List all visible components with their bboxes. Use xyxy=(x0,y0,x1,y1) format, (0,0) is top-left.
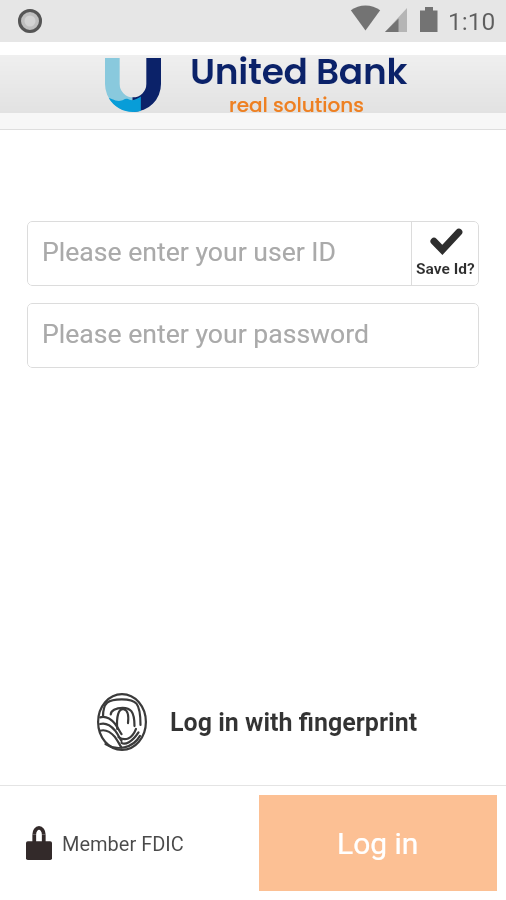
button[interactable]: Log in with fingerprint xyxy=(97,693,418,751)
staticText: Log in with fingerprint xyxy=(170,708,418,737)
staticText: Member FDIC xyxy=(62,832,184,855)
button[interactable]: Log in xyxy=(259,795,497,891)
staticText: 1:10 xyxy=(448,7,496,36)
staticText: Please enter your password xyxy=(42,318,370,349)
staticText: United Bank xyxy=(190,46,408,96)
staticText: real solutions xyxy=(229,91,364,119)
button[interactable]: Please enter your password xyxy=(27,303,479,368)
button[interactable]: Member FDIC xyxy=(26,826,184,860)
button[interactable]: Please enter your user ID xyxy=(27,221,411,286)
staticText: Log in xyxy=(337,826,419,861)
staticText: Please enter your user ID xyxy=(42,236,337,267)
button[interactable]: Save Id xyxy=(412,221,479,286)
staticText: Save Id? xyxy=(416,260,475,278)
